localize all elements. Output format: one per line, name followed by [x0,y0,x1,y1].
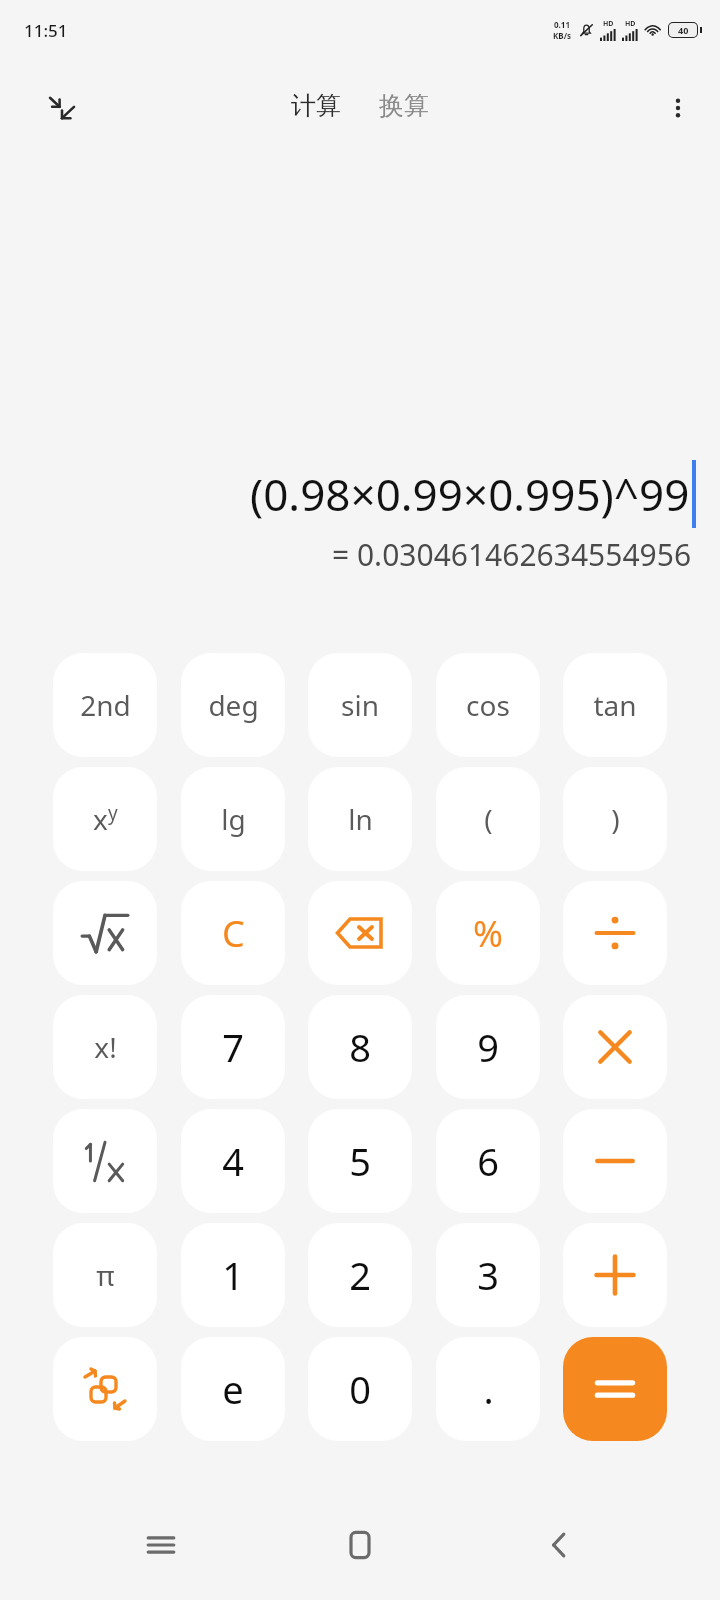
button[interactable] [53,1109,157,1213]
staticText: tan [593,686,637,724]
button[interactable]: . [436,1337,540,1441]
staticText: 9 [477,1021,499,1073]
staticText: ( [484,800,493,838]
button[interactable]: 7 [181,995,285,1099]
staticText: e [222,1363,244,1415]
button[interactable]: 5 [308,1109,412,1213]
button[interactable]: 8 [308,995,412,1099]
staticText: sin [341,686,379,724]
button[interactable]: Equals [563,1337,667,1441]
staticText: deg [208,686,259,724]
button[interactable]: 2 [308,1223,412,1327]
button[interactable]: 2nd [53,653,157,757]
button[interactable]: 4 [181,1109,285,1213]
button[interactable]: Multiply [563,995,667,1099]
staticText: % [473,909,503,958]
staticText: HD [625,19,636,29]
button[interactable]: % [436,881,540,985]
button[interactable]: cos [436,653,540,757]
staticText: 8 [349,1021,371,1073]
staticText: 3 [477,1249,499,1301]
button[interactable]: ( [436,767,540,871]
staticText: ) [611,800,620,838]
button[interactable]: Minus [563,1109,667,1213]
button[interactable]: 换算 [373,86,435,125]
button[interactable]: Backspace [308,881,412,985]
button[interactable]: deg [181,653,285,757]
button[interactable]: More options [652,82,704,134]
staticText: 4 [222,1135,244,1187]
button[interactable]: Divide [563,881,667,985]
staticText: . [483,1363,494,1415]
button[interactable]: x! [53,995,157,1099]
button[interactable]: Plus [563,1223,667,1327]
button[interactable]: Home [322,1507,398,1583]
staticText: cos [466,686,510,724]
button[interactable]: 0 [308,1337,412,1441]
button[interactable]: Unit converter [53,1337,157,1441]
staticText: HD [603,19,614,29]
button[interactable]: 6 [436,1109,540,1213]
staticText: lg [221,800,246,838]
button[interactable]: π [53,1223,157,1327]
staticText: x [93,800,108,838]
staticText: 0.11 [554,19,570,30]
button[interactable]: Back [521,1507,597,1583]
staticText: = 0.030461462634554956 [332,534,692,575]
button[interactable]: e [181,1337,285,1441]
staticText: x! [94,1028,117,1066]
staticText: ln [348,800,373,838]
staticText: 0 [349,1363,371,1415]
button[interactable]: lg [181,767,285,871]
button[interactable]: ln [308,767,412,871]
staticText: π [96,1256,115,1294]
button[interactable]: sin [308,653,412,757]
button[interactable]: 3 [436,1223,540,1327]
staticText: 40 [678,24,689,36]
staticText: 11:51 [24,19,68,42]
staticText: 6 [477,1135,499,1187]
button[interactable]: C [181,881,285,985]
staticText: 2 [349,1249,371,1301]
button[interactable]: ) [563,767,667,871]
staticText: C [222,909,245,958]
button[interactable]: tan [563,653,667,757]
staticText: 1 [222,1249,244,1301]
staticText: 7 [222,1021,244,1073]
staticText: 2nd [80,686,131,724]
staticText: 计算 [291,90,341,121]
button[interactable]: 9 [436,995,540,1099]
staticText: y [108,800,118,826]
staticText: 换算 [379,90,429,121]
staticText: 5 [349,1135,371,1187]
button[interactable]: Collapse [36,82,88,134]
button[interactable]: x [53,767,157,871]
staticText: KB/s [553,30,571,41]
button[interactable] [53,881,157,985]
staticText: (0.98×0.99×0.995)^99 [250,464,690,524]
button[interactable]: 计算 [285,86,347,125]
button[interactable]: 1 [181,1223,285,1327]
button[interactable]: Recents [123,1507,199,1583]
